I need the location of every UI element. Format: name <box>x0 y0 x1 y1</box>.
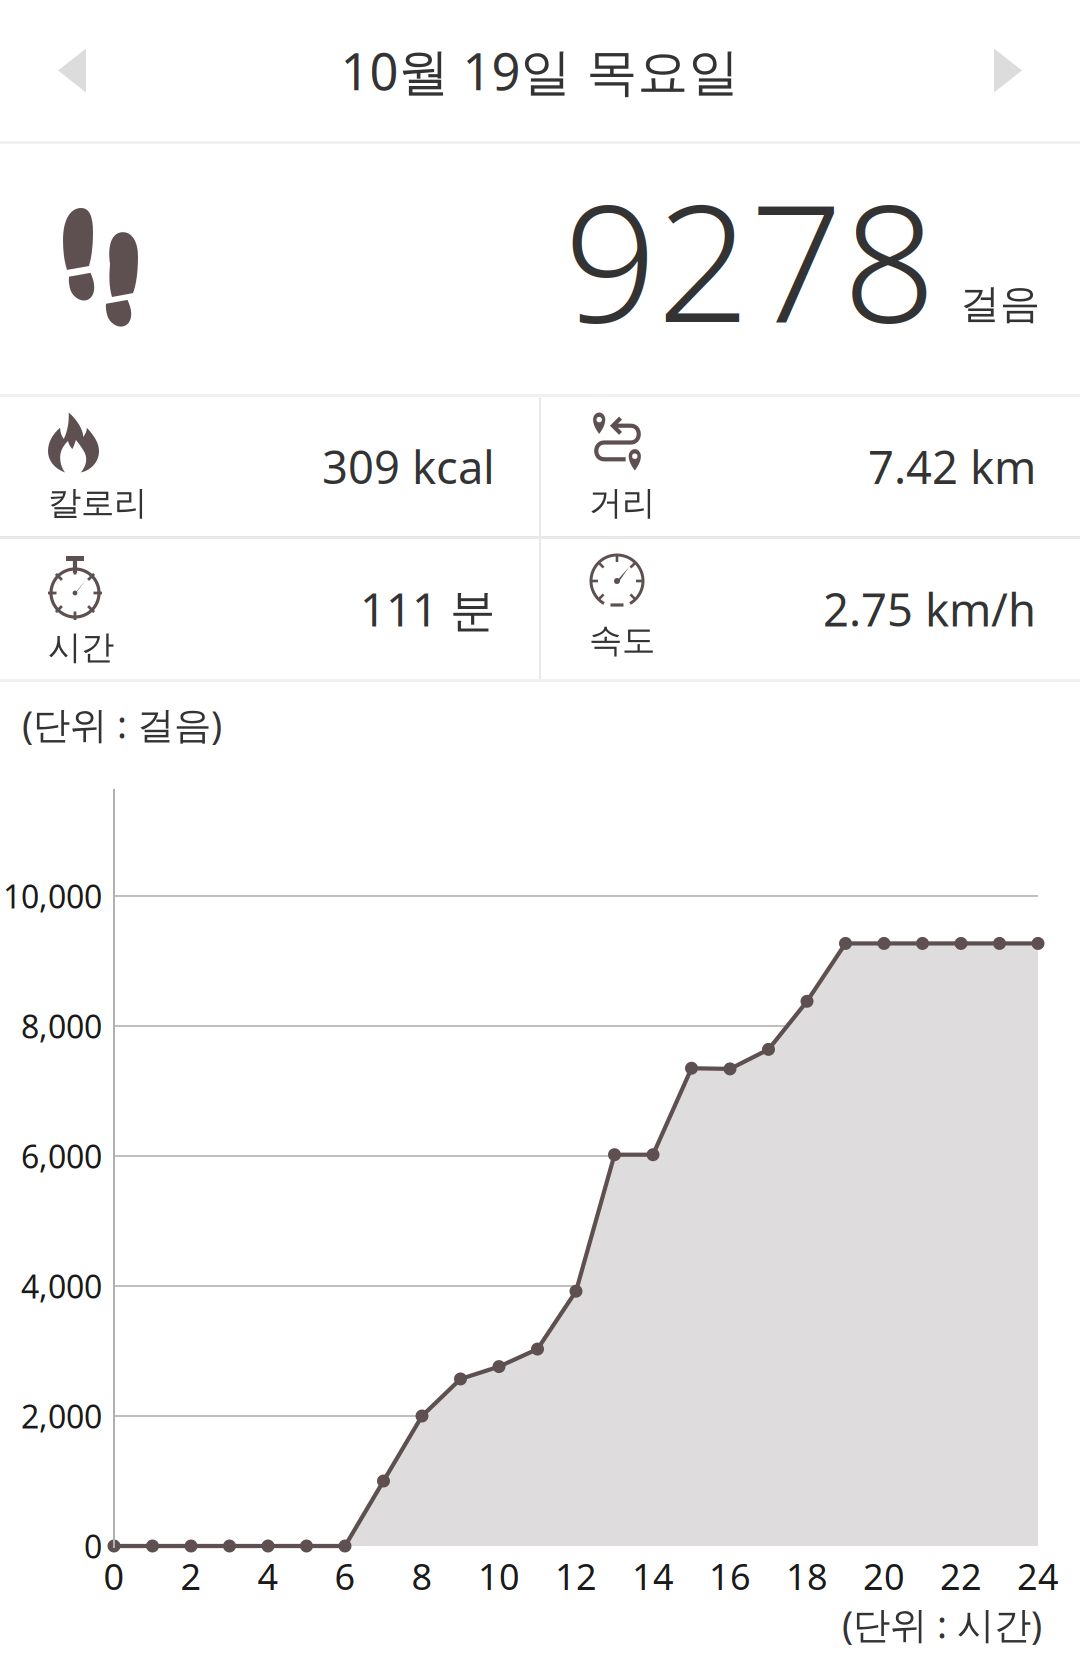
staticText: 거리 <box>589 482 655 523</box>
staticText: 7.42 km <box>868 436 1036 497</box>
staticText: 시간 <box>48 627 114 668</box>
staticText: 10,000 <box>3 875 102 917</box>
staticText: 2,000 <box>21 1395 102 1437</box>
staticText: 14 <box>632 1552 674 1600</box>
button[interactable]: Next day <box>936 8 1080 132</box>
staticText: 2.75 km/h <box>823 579 1036 639</box>
button[interactable]: 칼로리 <box>0 397 539 535</box>
button[interactable]: Previous day <box>0 8 144 132</box>
staticText: (단위 : 걸음) <box>22 699 222 749</box>
staticText: 걸음 <box>960 279 1040 328</box>
staticText: 칼로리 <box>48 482 147 523</box>
staticText: 0 <box>103 1552 124 1600</box>
staticText: 4,000 <box>21 1265 102 1307</box>
staticText: 20 <box>863 1552 905 1600</box>
staticText: 18 <box>786 1552 828 1600</box>
staticText: 0 <box>84 1525 102 1567</box>
staticText: 8,000 <box>21 1005 102 1047</box>
staticText: 111 분 <box>360 579 495 639</box>
staticText: 속도 <box>589 620 655 661</box>
staticText: 309 kcal <box>322 436 495 497</box>
staticText: 4 <box>257 1552 278 1600</box>
staticText: 9278 <box>564 151 936 367</box>
staticText: 6,000 <box>21 1135 102 1177</box>
staticText: 24 <box>1017 1552 1059 1600</box>
staticText: 10 <box>478 1552 520 1600</box>
staticText: 22 <box>940 1552 982 1600</box>
staticText: 10월 19일 목요일 <box>340 37 739 104</box>
staticText: (단위 : 시간) <box>842 1599 1042 1649</box>
button[interactable]: 속도 <box>541 539 1080 679</box>
button[interactable]: 시간 <box>0 539 539 679</box>
staticText: 6 <box>334 1552 355 1600</box>
staticText: 8 <box>411 1552 432 1600</box>
staticText: 16 <box>709 1552 751 1600</box>
staticText: 12 <box>555 1552 597 1600</box>
button[interactable]: 거리 <box>541 397 1080 535</box>
staticText: 2 <box>180 1552 201 1600</box>
